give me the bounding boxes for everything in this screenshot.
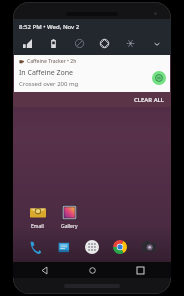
staticText: Gallery (61, 223, 78, 230)
button[interactable]: CLEAR ALL (127, 93, 171, 107)
button[interactable]: Do not disturb (71, 35, 88, 52)
staticText: Email (31, 223, 44, 230)
button[interactable]: Messaging (54, 237, 74, 257)
button[interactable]: Caffeine Tracker • 2h (14, 55, 170, 92)
button[interactable]: Auto rotate (96, 35, 113, 52)
other: Caffeine Tracker app icon (152, 71, 166, 85)
button[interactable]: Recent apps (123, 262, 157, 278)
button[interactable]: Gallery (53, 203, 85, 231)
button[interactable]: Signal (19, 35, 36, 52)
button[interactable]: All apps (82, 237, 102, 257)
button[interactable]: Email (21, 203, 53, 231)
button[interactable]: Home (75, 262, 109, 278)
staticText: CLEAR ALL (134, 96, 164, 104)
button[interactable]: Phone (25, 237, 45, 257)
staticText: Crossed over 200 mg (19, 80, 79, 88)
staticText: 8:52 PM • Wed, Nov 2 (19, 23, 80, 31)
button[interactable]: Chrome (110, 237, 130, 257)
staticText: In Caffeine Zone (19, 68, 74, 78)
button[interactable]: Camera (139, 237, 159, 257)
button[interactable]: Back (27, 262, 61, 278)
button[interactable]: Battery (45, 35, 62, 52)
button[interactable]: Flashlight (122, 35, 139, 52)
staticText: Caffeine Tracker • 2h (27, 58, 77, 65)
button[interactable]: Expand (148, 35, 165, 52)
